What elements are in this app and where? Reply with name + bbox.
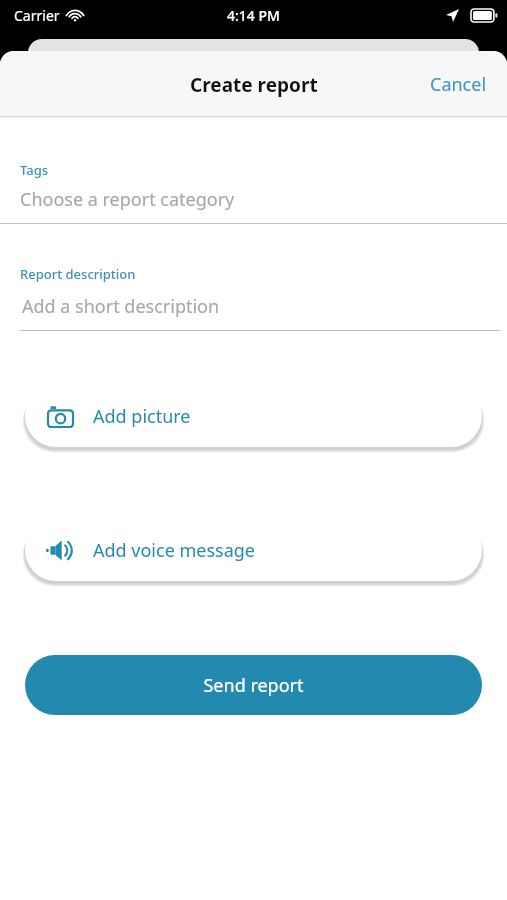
staticText: Add voice message (93, 538, 256, 563)
staticText: Add picture (93, 404, 191, 429)
staticText: Cancel (430, 72, 487, 97)
staticText: Add a short description (22, 294, 220, 319)
staticText: Tags (20, 161, 49, 179)
other: Add voice message (46, 540, 74, 561)
button[interactable]: Choose a report category (0, 187, 507, 224)
button[interactable]: Add picture (25, 385, 482, 447)
other: Add picture (48, 405, 73, 427)
staticText: Report description (20, 265, 136, 283)
staticText: Create report (190, 72, 318, 98)
staticText: Send report (203, 673, 304, 698)
staticText: Carrier (14, 6, 60, 25)
button[interactable]: Cancel (410, 60, 507, 109)
staticText: 4:14 PM (227, 6, 280, 25)
button[interactable]: Add voice message (25, 519, 482, 581)
button[interactable]: Add a short description (0, 294, 507, 331)
staticText: Choose a report category (20, 187, 235, 212)
button[interactable]: Send report (25, 655, 482, 715)
